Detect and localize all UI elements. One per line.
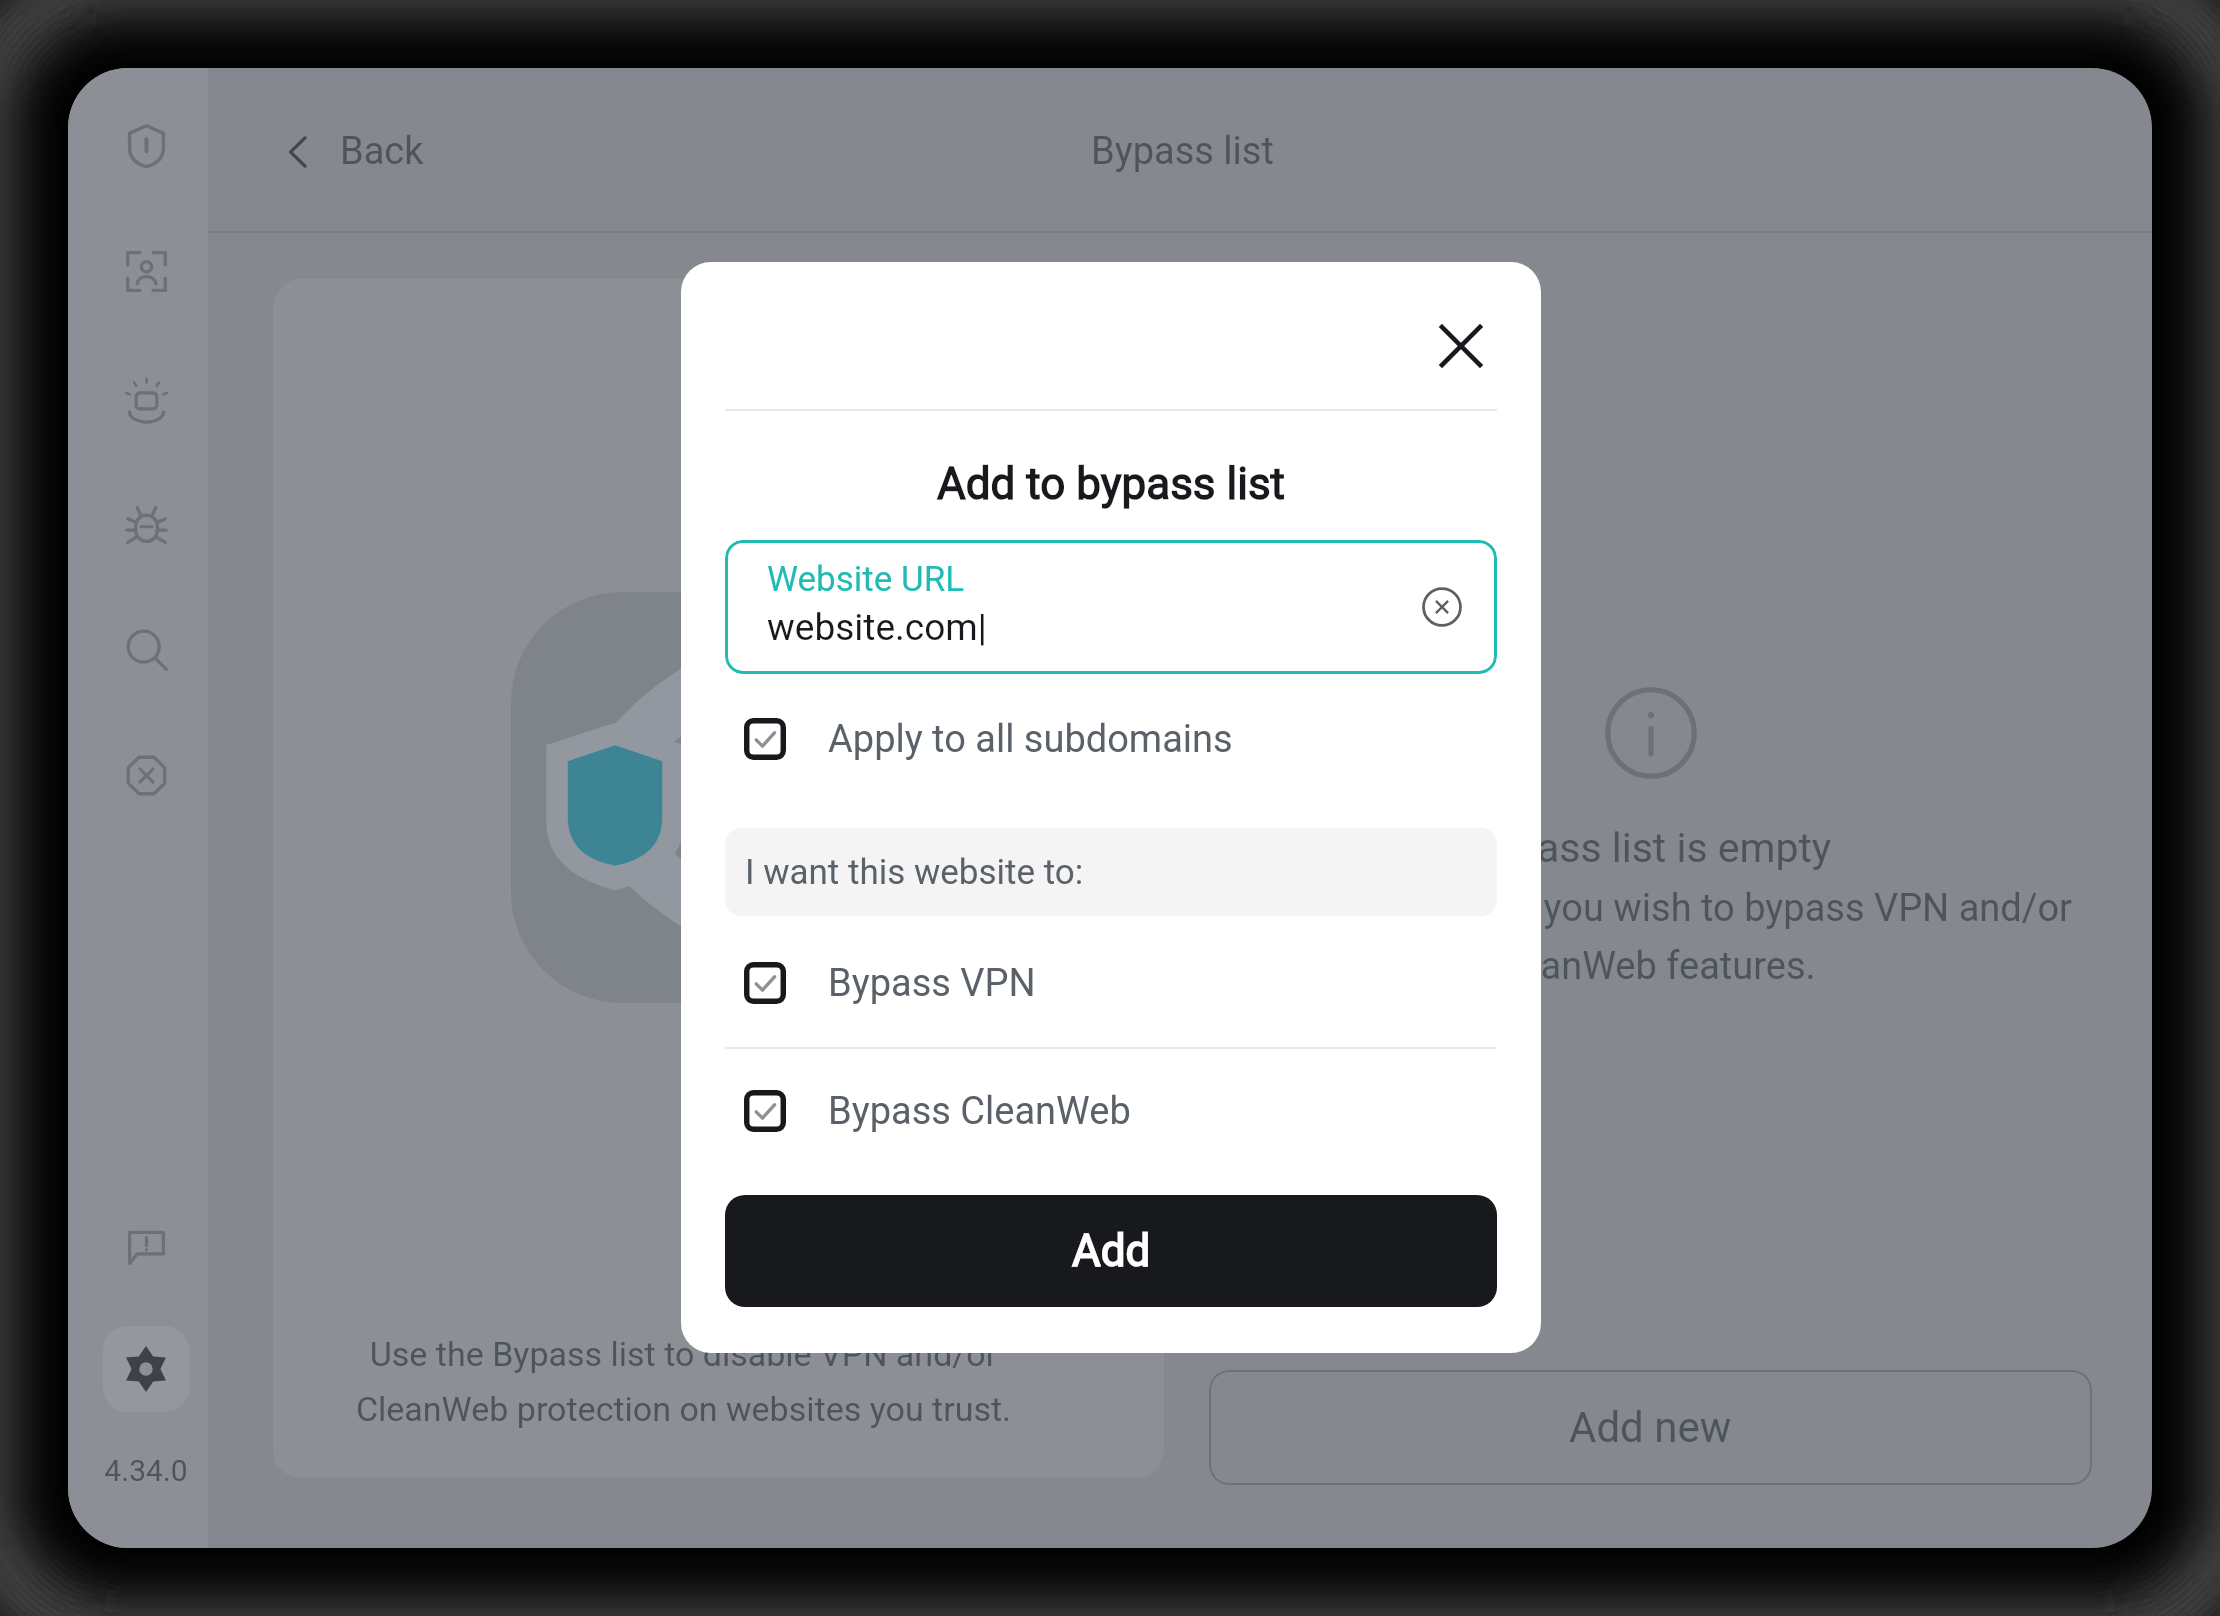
button[interactable]: Antivirus [103,481,189,567]
button[interactable]: Website URL [725,540,1497,674]
button[interactable]: Feedback [103,1202,189,1288]
staticText: Bypass list is empty [1469,824,1832,872]
button[interactable]: Add [725,1195,1497,1307]
staticText: Use the Bypass list to disable VPN and/o… [273,1334,1129,1429]
staticText: Apply to all subdomains [828,717,1233,762]
button[interactable]: Bypass CleanWeb [744,1068,1497,1154]
staticText: Back [340,129,424,174]
staticText: Bypass list [1091,129,1274,174]
button[interactable]: Add new [1209,1370,2092,1485]
button[interactable]: Search [103,606,189,692]
button[interactable]: Apply to all subdomains [744,696,1497,782]
button[interactable]: Blocker [103,732,189,818]
staticText: website.com| [767,606,987,649]
button[interactable]: Clear [1415,580,1469,634]
button[interactable]: Alerts [103,356,189,442]
button[interactable]: Close [1429,314,1493,378]
button[interactable]: Back [276,129,424,174]
staticText: I want this website to: [745,852,1084,893]
button[interactable]: Security [103,102,189,188]
staticText: Bypass VPN [828,961,1036,1006]
button[interactable]: Settings [103,1326,189,1412]
staticText: Add websites that you wish to bypass VPN… [1230,886,2072,988]
button[interactable]: Bypass VPN [744,940,1497,1026]
staticText: Bypass CleanWeb [828,1089,1131,1134]
staticText: Website URL [767,559,965,600]
staticText: Add new [1569,1403,1732,1452]
staticText: 4.34.0 [76,1453,216,1488]
staticText: Add to bypass list [681,458,1541,510]
button[interactable]: Identity [103,228,189,314]
staticText: Add [1072,1225,1151,1277]
